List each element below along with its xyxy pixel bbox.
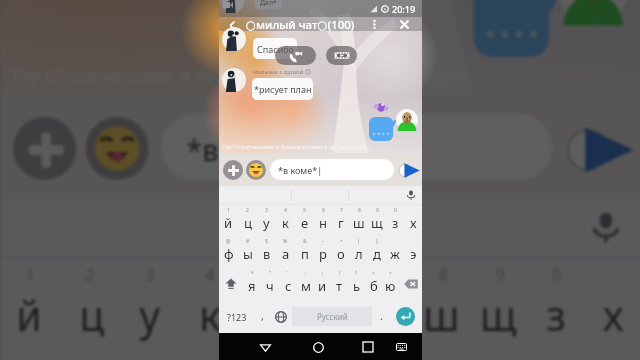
button[interactable]: Send bbox=[562, 111, 637, 186]
button[interactable]: 7 bbox=[332, 205, 350, 236]
staticText: *рисует план bbox=[254, 83, 312, 95]
button[interactable]: Emoji bbox=[86, 117, 149, 180]
button[interactable]: 1 bbox=[0, 259, 60, 356]
button[interactable]: х bbox=[404, 205, 422, 236]
button[interactable]: 9 bbox=[470, 259, 527, 356]
button[interactable]: Enter bbox=[396, 307, 415, 326]
button[interactable]: Recents bbox=[358, 337, 378, 357]
button[interactable]: # bbox=[238, 236, 257, 268]
button[interactable]: * bbox=[243, 268, 261, 300]
button[interactable]: Send bbox=[397, 158, 421, 182]
button[interactable]: Home bbox=[308, 337, 328, 357]
staticText: 3 bbox=[265, 207, 268, 214]
button[interactable]: 6 bbox=[314, 205, 332, 236]
button[interactable]: : bbox=[297, 268, 314, 300]
button[interactable] bbox=[231, 199, 407, 256]
button[interactable]: ?123 bbox=[219, 300, 254, 333]
staticText: у bbox=[139, 287, 161, 344]
button[interactable]: Back bbox=[255, 337, 275, 357]
button[interactable]: Voice input bbox=[403, 187, 419, 203]
button[interactable]: Спасибо bbox=[253, 38, 297, 59]
button[interactable]: % bbox=[276, 236, 295, 268]
button[interactable]: 2 bbox=[238, 205, 257, 236]
button[interactable]: *в коме*| bbox=[270, 159, 394, 180]
button[interactable]: Video bbox=[326, 46, 357, 65]
button[interactable]: ( bbox=[413, 357, 470, 360]
button[interactable]: Attach bbox=[13, 117, 76, 180]
button[interactable]: Back bbox=[224, 17, 240, 33]
staticText: ф bbox=[224, 245, 234, 263]
button[interactable]: 3 bbox=[120, 259, 180, 356]
staticText: Русский bbox=[317, 311, 348, 322]
button[interactable]: 9 bbox=[368, 205, 386, 236]
button[interactable]: 2 bbox=[60, 259, 120, 356]
button[interactable]: More options bbox=[366, 16, 383, 33]
button[interactable]: - bbox=[314, 236, 332, 268]
staticText: 0 bbox=[552, 265, 562, 287]
button[interactable]: э bbox=[404, 236, 422, 268]
button[interactable]: 4 bbox=[180, 259, 240, 356]
staticText: % bbox=[283, 238, 288, 245]
button[interactable]: , bbox=[254, 300, 270, 333]
button[interactable]: 4 bbox=[276, 205, 295, 236]
button[interactable]: 5 bbox=[295, 205, 314, 236]
button[interactable]: % bbox=[180, 357, 240, 360]
button[interactable]: Close bbox=[396, 16, 413, 33]
staticText: к bbox=[282, 214, 289, 232]
button[interactable]: *рисует план bbox=[252, 78, 313, 100]
staticText: г bbox=[338, 214, 344, 232]
button[interactable]: 6 bbox=[300, 259, 357, 356]
button[interactable]: Emoji bbox=[246, 160, 266, 180]
button[interactable]: + bbox=[332, 236, 350, 268]
button[interactable]: 3 bbox=[257, 205, 276, 236]
button[interactable]: Keyboard bbox=[391, 337, 411, 357]
button[interactable]: Change language bbox=[270, 300, 292, 333]
button[interactable]: ж bbox=[386, 236, 404, 268]
button[interactable]: 8 bbox=[413, 259, 470, 356]
button[interactable]: ( bbox=[350, 236, 368, 268]
button[interactable]: Attach bbox=[223, 160, 243, 180]
button[interactable]: Backspace bbox=[399, 268, 422, 300]
button[interactable]: 1 bbox=[219, 205, 238, 236]
button[interactable]: х bbox=[584, 259, 640, 356]
button[interactable]: *в коме*| bbox=[161, 114, 552, 180]
button[interactable]: ' bbox=[279, 268, 297, 300]
button[interactable]: ) bbox=[368, 236, 386, 268]
button[interactable]: 0 bbox=[386, 205, 404, 236]
button[interactable]: > bbox=[382, 268, 399, 300]
staticText: 4 bbox=[205, 265, 215, 287]
button[interactable]: . bbox=[372, 300, 391, 333]
button[interactable]: $ bbox=[257, 236, 276, 268]
button[interactable]: & bbox=[295, 236, 314, 268]
button[interactable]: ; bbox=[314, 268, 331, 300]
button[interactable]: @ bbox=[219, 236, 238, 268]
button[interactable]: 0 bbox=[527, 259, 584, 356]
button[interactable]: Shift bbox=[219, 268, 243, 300]
button[interactable]: Voice input bbox=[581, 202, 631, 252]
button[interactable]: " bbox=[261, 268, 279, 300]
staticText: л bbox=[355, 245, 363, 263]
button[interactable]: ? bbox=[348, 268, 365, 300]
button[interactable]: 7 bbox=[357, 259, 414, 356]
button[interactable]: < bbox=[365, 268, 382, 300]
button[interactable]: 8 bbox=[350, 205, 368, 236]
staticText: 5 bbox=[265, 265, 275, 287]
button[interactable]: Русский bbox=[292, 307, 372, 326]
button[interactable]: 5 bbox=[240, 259, 300, 356]
staticText: @ bbox=[226, 238, 231, 245]
button[interactable] bbox=[0, 199, 227, 256]
staticText: ш bbox=[353, 214, 365, 232]
button[interactable]: ! bbox=[331, 268, 348, 300]
button[interactable]: Voice call bbox=[275, 46, 316, 65]
